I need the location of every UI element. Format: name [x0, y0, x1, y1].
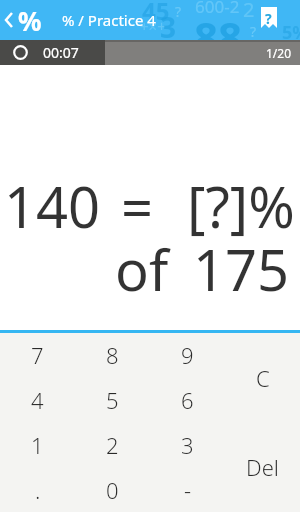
button[interactable]: 4 [0, 377, 75, 422]
staticText: 45 [142, 0, 170, 27]
button[interactable]: 0 [75, 467, 150, 512]
button[interactable]: 1 [0, 422, 75, 467]
staticText: of [115, 231, 169, 307]
button[interactable]: 7 [0, 333, 75, 377]
staticText: 1 [31, 430, 44, 460]
staticText: 4 [31, 385, 44, 415]
button[interactable]: 9 [150, 333, 225, 377]
staticText: = [121, 168, 154, 244]
staticText: 3 [160, 8, 177, 40]
staticText: 88 [194, 8, 243, 40]
staticText: 8 [106, 340, 119, 370]
staticText: % [18, 3, 42, 38]
staticText: 0 [106, 475, 119, 505]
staticText: 6 [181, 385, 194, 415]
staticText: 7 [31, 340, 44, 370]
staticText: 5% [282, 20, 300, 40]
staticText: ? [250, 22, 257, 40]
staticText: 2 [243, 0, 255, 23]
button[interactable]: . [0, 467, 75, 512]
button[interactable]: 3 [150, 422, 225, 467]
staticText: 175 [193, 231, 290, 307]
staticText: ? [175, 2, 182, 21]
button[interactable]: ? [261, 0, 277, 21]
staticText: 1/20 [266, 45, 292, 61]
staticText: 2 [106, 430, 119, 460]
staticText: . [35, 475, 41, 505]
staticText: [?]% [187, 168, 295, 244]
staticText: 00:07 [43, 43, 79, 62]
staticText: - [184, 475, 192, 505]
button[interactable]: 2 [75, 422, 150, 467]
staticText: 140 [4, 168, 101, 244]
staticText: ? [265, 9, 272, 28]
staticText: C [256, 363, 270, 393]
button[interactable]: % [4, 0, 42, 40]
staticText: 3 [181, 430, 194, 460]
staticText: 9 [181, 340, 194, 370]
button[interactable]: - [150, 467, 225, 512]
staticText: 5 [106, 385, 119, 415]
button[interactable]: Del [225, 422, 300, 512]
staticText: Del [246, 452, 279, 482]
button[interactable]: 6 [150, 377, 225, 422]
button[interactable]: 5 [75, 377, 150, 422]
staticText: % / Practice 4 [62, 10, 156, 30]
button[interactable]: 8 [75, 333, 150, 377]
button[interactable]: C [225, 333, 300, 422]
staticText: +×+ [140, 16, 166, 36]
staticText: 600-2 [195, 0, 240, 18]
